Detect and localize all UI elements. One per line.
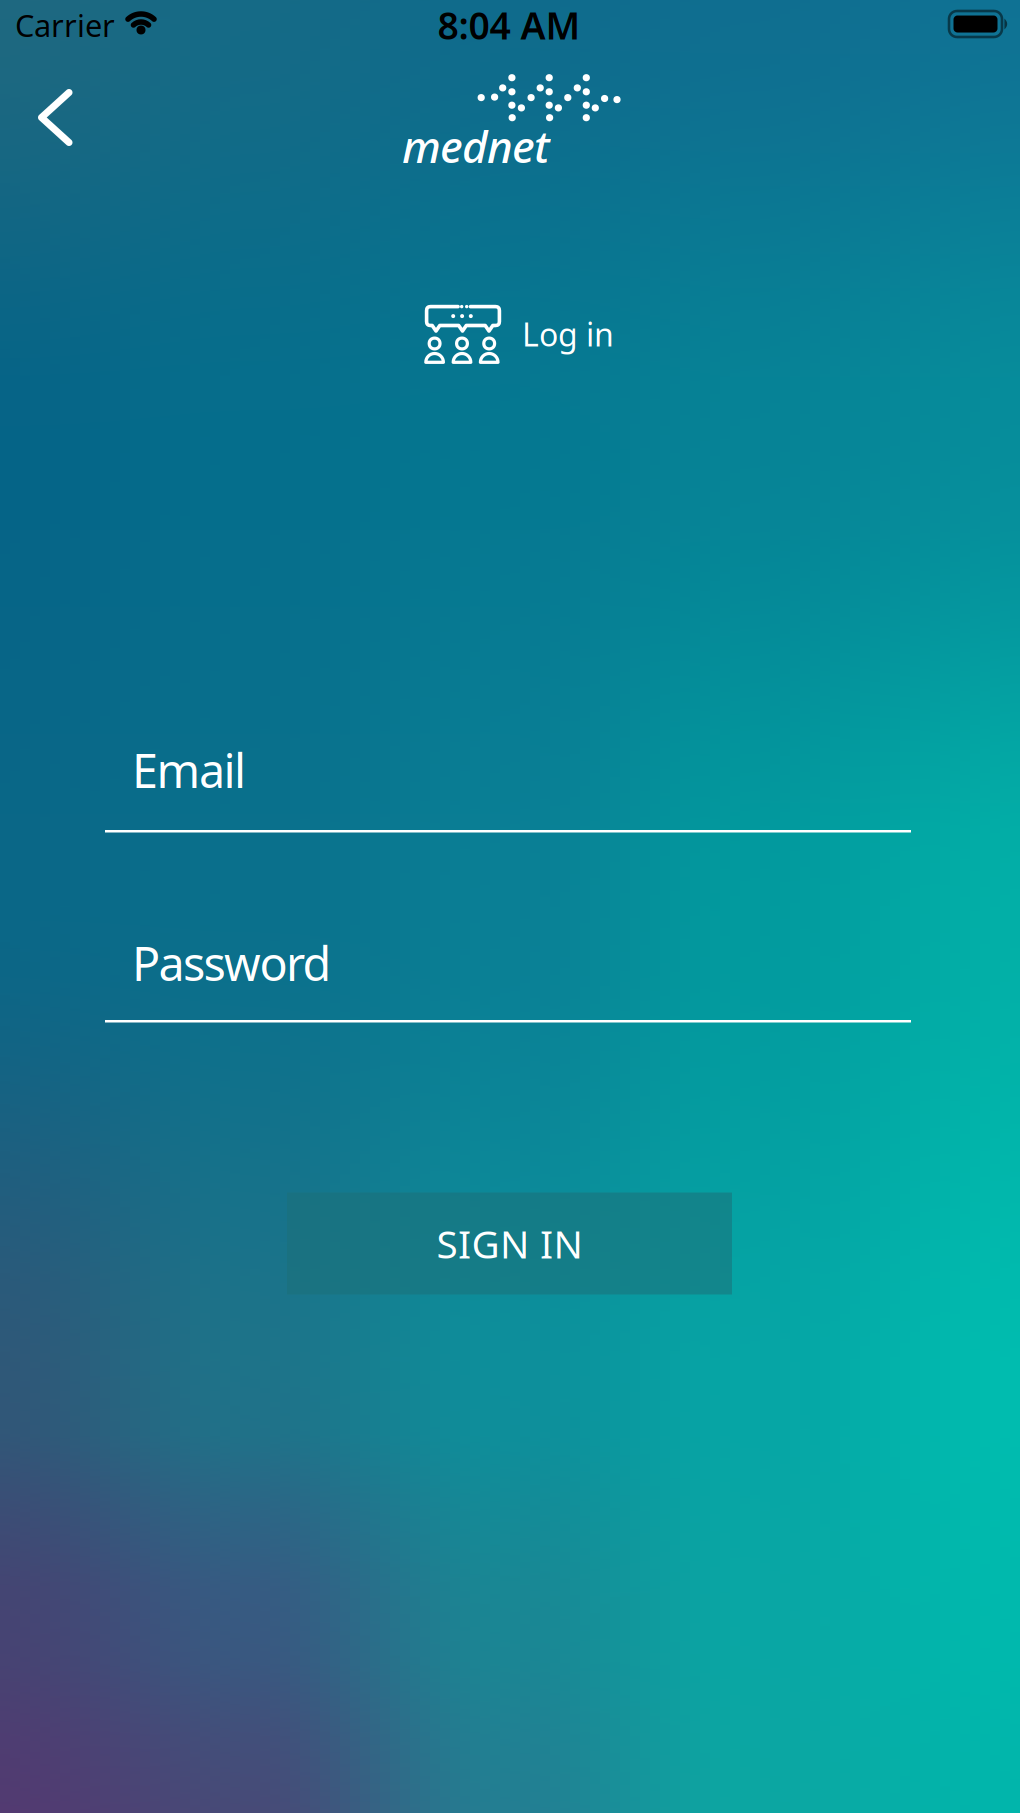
staticText: Password	[132, 932, 331, 994]
staticText: Log in	[522, 313, 614, 355]
staticText: Carrier	[15, 5, 115, 45]
button[interactable]: Email	[105, 739, 911, 833]
staticText: mednet	[402, 117, 550, 175]
staticText: 8:04 AM	[437, 0, 580, 50]
staticText: Email	[132, 739, 246, 801]
staticText: SIGN IN	[436, 1218, 582, 1269]
button[interactable]: SIGN IN	[287, 1192, 732, 1294]
button[interactable]: Back	[38, 89, 72, 146]
button[interactable]: Password	[105, 932, 911, 1023]
